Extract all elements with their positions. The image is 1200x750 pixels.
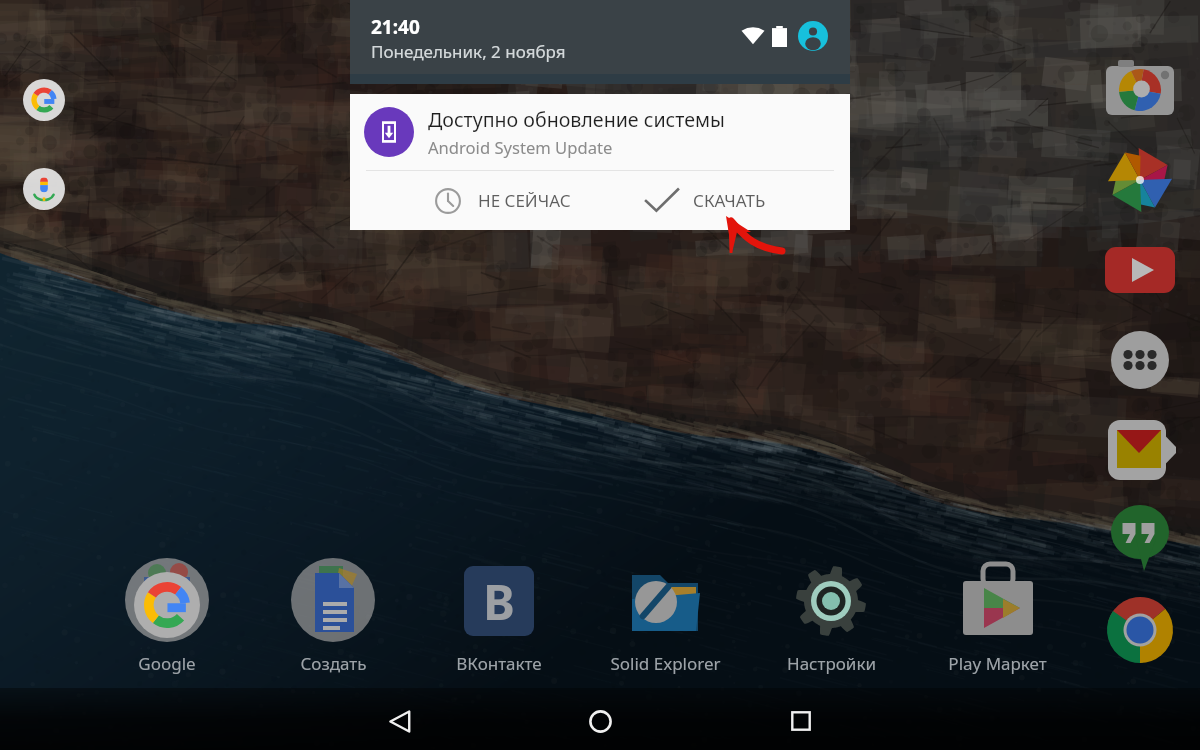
button[interactable]: СКАЧАТЬ bbox=[596, 171, 850, 230]
button[interactable]: Play Маркет bbox=[927, 556, 1067, 680]
button[interactable]: Chrome bbox=[1095, 585, 1185, 675]
staticText: B bbox=[483, 569, 515, 634]
staticText: ВКонтакте bbox=[456, 652, 542, 675]
staticText: Google bbox=[138, 652, 196, 675]
button[interactable]: B bbox=[429, 556, 569, 680]
staticText: Создать bbox=[300, 652, 367, 675]
staticText: Android System Update bbox=[428, 136, 613, 159]
button[interactable]: Voice search bbox=[23, 168, 65, 210]
staticText: Понедельник, 2 ноября bbox=[371, 40, 566, 63]
button[interactable]: Back bbox=[374, 695, 426, 747]
staticText: СКАЧАТЬ bbox=[693, 189, 766, 212]
button[interactable]: Recent apps bbox=[775, 695, 827, 747]
staticText: Solid Explorer bbox=[610, 652, 721, 675]
button[interactable]: Google bbox=[97, 556, 237, 680]
staticText: НЕ СЕЙЧАС bbox=[478, 189, 571, 212]
button[interactable]: Hangouts bbox=[1095, 492, 1185, 582]
button[interactable]: Camera bbox=[1095, 45, 1185, 135]
button[interactable]: Доступно обновление системы bbox=[350, 94, 850, 230]
button[interactable]: Solid Explorer bbox=[595, 556, 735, 680]
staticText: Play Маркет bbox=[948, 652, 1047, 675]
staticText: Настройки bbox=[787, 652, 876, 675]
staticText: Доступно обновление системы bbox=[428, 106, 725, 133]
button[interactable]: Google search bbox=[23, 79, 65, 121]
button[interactable]: Создать bbox=[263, 556, 403, 680]
button[interactable]: Photos bbox=[1095, 135, 1185, 225]
button[interactable]: Home bbox=[574, 695, 626, 747]
button[interactable]: Gmail bbox=[1095, 405, 1185, 495]
button[interactable]: YouTube bbox=[1095, 225, 1185, 315]
staticText: 21:40 bbox=[371, 14, 420, 40]
button[interactable]: НЕ СЕЙЧАС bbox=[350, 171, 596, 230]
button[interactable]: Настройки bbox=[761, 556, 901, 680]
button[interactable]: Apps bbox=[1095, 315, 1185, 405]
